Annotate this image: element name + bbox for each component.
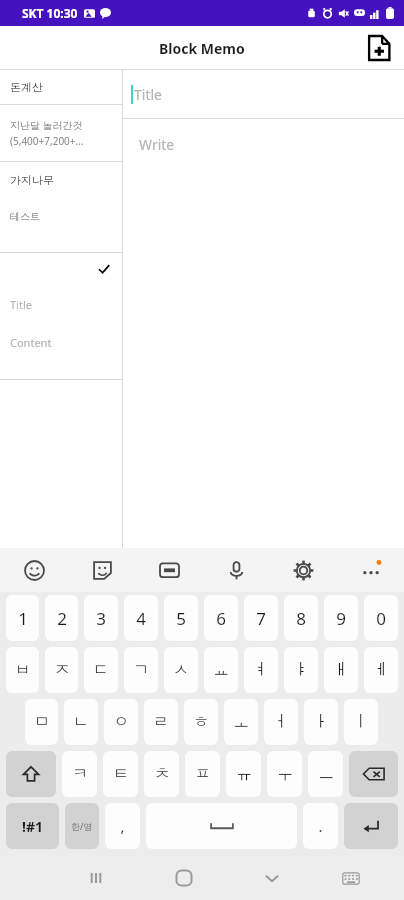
staticText: 8 [296,607,306,630]
button[interactable]: ㅣ [344,699,378,745]
button[interactable]: ㅊ [144,751,179,797]
button[interactable]: 0 [364,595,398,641]
button[interactable]: 6 [204,595,238,641]
button[interactable]: ㅡ [308,751,343,797]
button[interactable]: 돈계산 [0,70,122,104]
staticText: 가지나무 [10,173,54,187]
staticText: ㅠ [236,764,252,784]
button[interactable]: ㅠ [226,751,261,797]
button[interactable]: ㄱ [124,647,158,693]
button[interactable]: 1 [6,595,39,641]
staticText: ㅌ [113,764,129,784]
staticText: , [120,816,125,836]
staticText: ㅑ [293,660,309,680]
staticText: ㅏ [313,712,329,732]
button[interactable] [0,253,122,285]
button[interactable]: New memo [362,31,396,65]
button[interactable]: ㅈ [45,647,78,693]
staticText: ㅋ [72,764,88,784]
staticText: ㄱ [133,660,149,680]
button[interactable]: Shift [6,751,56,797]
staticText: ㅗ [233,712,249,732]
button[interactable]: Backspace [349,751,398,797]
button[interactable]: 지난달 놀러간것 [0,105,122,161]
button[interactable]: 가지나무 [0,162,122,198]
staticText: ㅕ [253,660,269,680]
button[interactable]: Switch keyboard [316,856,386,900]
button[interactable] [337,548,404,592]
button[interactable]: Hide keyboard [228,856,316,900]
button[interactable]: 테스트 [0,198,122,234]
button[interactable]: ㅓ [264,699,298,745]
staticText: . [318,816,323,836]
button[interactable]: ㅜ [267,751,302,797]
button[interactable]: Content [0,323,122,361]
button[interactable]: , [105,803,140,849]
button[interactable]: ㅍ [185,751,220,797]
staticText: 테스트 [10,210,40,223]
staticText: Title [10,297,32,312]
button[interactable]: Title [0,285,122,323]
staticText: 5 [176,607,186,630]
button[interactable]: Language [65,803,99,849]
staticText: 한/영 [71,820,93,832]
button[interactable]: 8 [284,595,318,641]
button[interactable]: ㄴ [64,699,98,745]
staticText: Content [10,335,52,350]
staticText: Title [134,85,162,104]
staticText: ㅎ [193,712,209,732]
button[interactable]: Space [146,803,297,849]
staticText: 1 [18,607,28,630]
staticText: ㅐ [333,660,349,680]
staticText: 3 [96,607,106,630]
button[interactable] [68,548,136,592]
staticText: !#1 [22,817,43,836]
button[interactable]: ㅇ [104,699,138,745]
staticText: Block Memo [159,39,245,58]
button[interactable]: Home [140,856,228,900]
button[interactable]: 4 [124,595,158,641]
button[interactable]: 2 [45,595,78,641]
button[interactable]: 9 [324,595,358,641]
staticText: 0 [376,607,386,630]
button[interactable] [136,548,203,592]
button[interactable]: Symbols [6,803,59,849]
button[interactable]: ㅎ [184,699,218,745]
staticText: ㄹ [153,712,169,732]
button[interactable] [270,548,337,592]
button[interactable]: . [303,803,338,849]
button[interactable]: ㅌ [103,751,138,797]
staticText: ㅓ [273,712,289,732]
button[interactable]: 5 [164,595,198,641]
button[interactable]: ㅁ [25,699,58,745]
button[interactable]: ㅐ [324,647,358,693]
button[interactable]: ㅗ [224,699,258,745]
button[interactable]: ㅋ [62,751,97,797]
button[interactable]: ㅂ [6,647,39,693]
staticText: ㄴ [73,712,89,732]
staticText: 6 [216,607,226,630]
staticText: ㄷ [93,660,109,680]
staticText: ㅁ [34,712,50,732]
button[interactable]: ㅕ [244,647,278,693]
button[interactable] [203,548,270,592]
button[interactable]: Recents [52,856,140,900]
button[interactable]: ㅑ [284,647,318,693]
staticText: 2 [57,607,67,630]
button[interactable]: ㅔ [364,647,398,693]
staticText: ㅈ [54,660,70,680]
button[interactable]: 7 [244,595,278,641]
button[interactable]: 3 [84,595,118,641]
button[interactable]: Title [123,70,404,118]
staticText: SKT 10:30 [22,5,78,21]
staticText: Write [139,135,175,154]
button[interactable]: ㅅ [164,647,198,693]
button[interactable]: ㅛ [204,647,238,693]
button[interactable]: ㄹ [144,699,178,745]
button[interactable] [0,548,68,592]
button[interactable]: ㅏ [304,699,338,745]
button[interactable]: Enter [344,803,398,849]
button[interactable]: ㄷ [84,647,118,693]
staticText: ㅜ [277,764,293,784]
